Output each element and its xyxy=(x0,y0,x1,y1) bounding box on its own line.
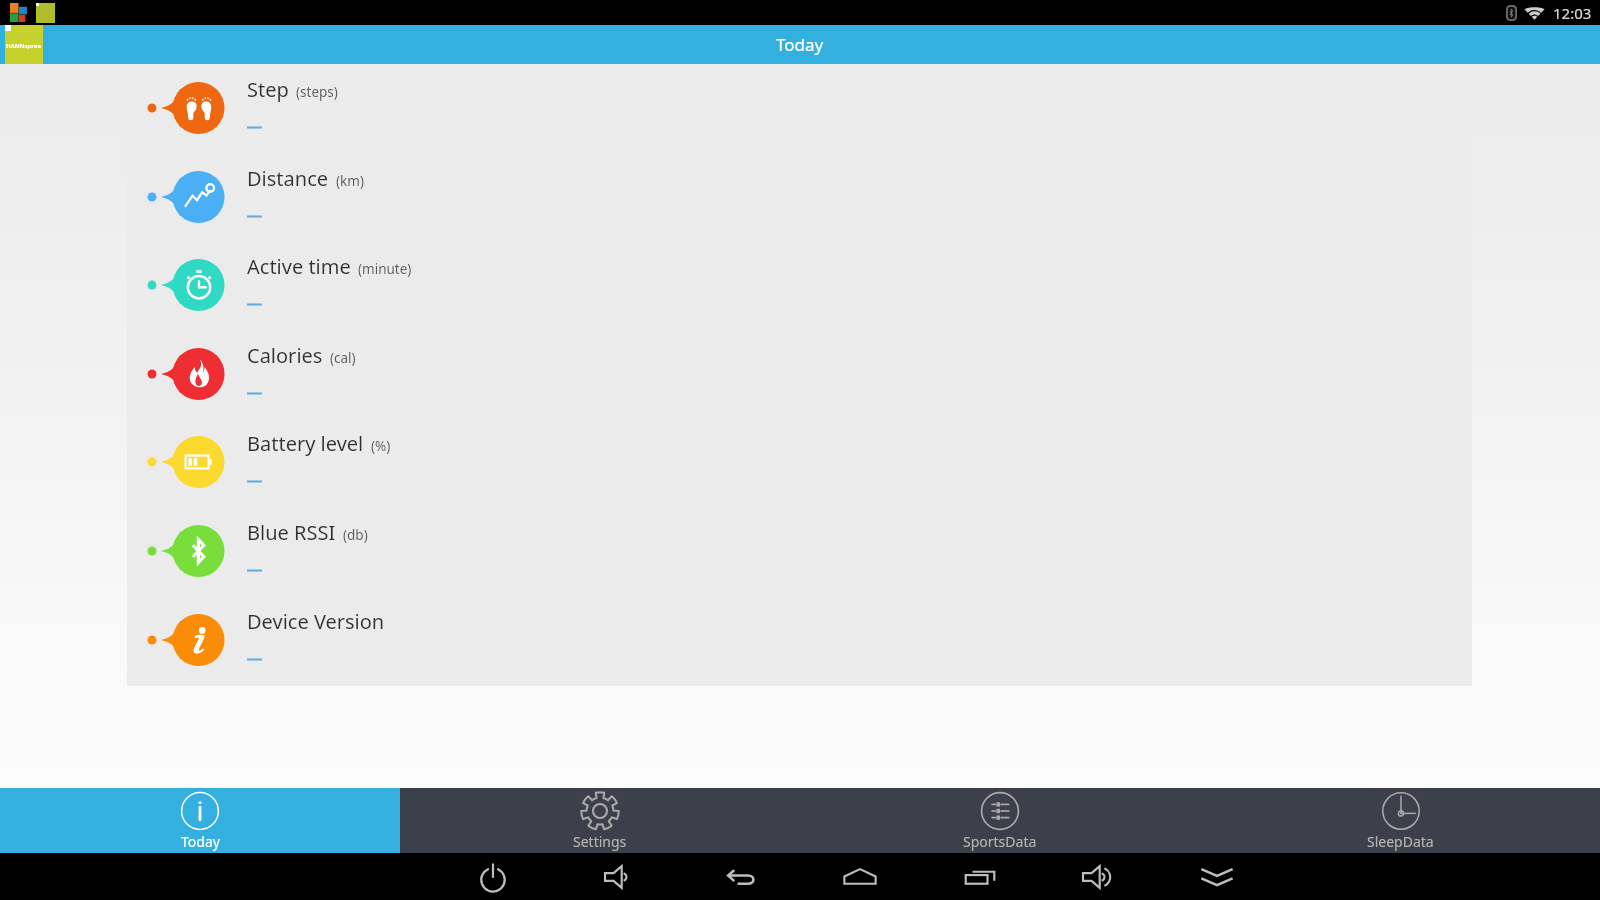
staticText: Battery level xyxy=(247,430,364,457)
button[interactable]: Today xyxy=(0,788,400,853)
staticText: (km) xyxy=(336,172,364,190)
staticText: Settings xyxy=(573,832,627,851)
staticText: (steps) xyxy=(296,83,338,101)
button[interactable]: Settings xyxy=(400,788,800,853)
staticText: Active time xyxy=(247,253,351,280)
staticText: (cal) xyxy=(330,349,356,367)
button[interactable]: Recent apps xyxy=(956,853,1004,900)
button[interactable]: App logo xyxy=(5,25,43,64)
button[interactable]: Active time xyxy=(127,241,1472,329)
staticText: Distance xyxy=(247,165,329,192)
staticText: Blue RSSI xyxy=(247,519,336,546)
button[interactable]: SportsData xyxy=(800,788,1200,853)
staticText: 12:03 xyxy=(1553,3,1592,23)
button[interactable]: Blue RSSI xyxy=(127,507,1472,595)
button[interactable]: Battery level xyxy=(127,418,1472,506)
button[interactable]: Back xyxy=(717,853,765,900)
button[interactable]: SleepData xyxy=(1200,788,1600,853)
button[interactable]: Volume down xyxy=(596,853,644,900)
button[interactable]: Step xyxy=(127,64,1472,152)
button[interactable]: Distance xyxy=(127,153,1472,241)
button[interactable]: Calories xyxy=(127,330,1472,418)
button[interactable]: Volume up xyxy=(1074,853,1122,900)
button[interactable]: Home xyxy=(836,853,884,900)
staticText: Today xyxy=(776,33,824,56)
staticText: Today xyxy=(181,832,220,851)
button[interactable]: Device Version xyxy=(127,596,1472,684)
staticText: (%) xyxy=(371,437,391,455)
staticText: HANNspree xyxy=(6,42,42,50)
staticText: (minute) xyxy=(358,260,412,278)
staticText: SportsData xyxy=(963,832,1037,851)
staticText: Step xyxy=(247,76,289,103)
staticText: (db) xyxy=(343,526,368,544)
staticText: Device Version xyxy=(247,608,385,635)
button[interactable]: Power xyxy=(469,853,517,900)
button[interactable]: Hide xyxy=(1193,853,1241,900)
staticText: SleepData xyxy=(1367,832,1434,851)
staticText: Calories xyxy=(247,342,323,369)
